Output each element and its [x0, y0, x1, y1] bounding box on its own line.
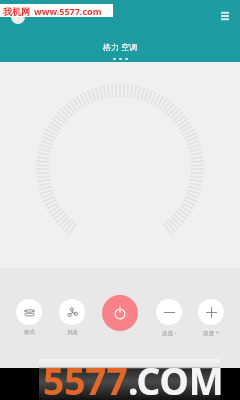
staticText: 我机网 [3, 6, 30, 17]
button[interactable]: Power [102, 295, 138, 331]
button[interactable]: 模式 [7, 299, 51, 336]
button[interactable]: Menu [212, 3, 238, 29]
button[interactable]: 温度 + [189, 299, 233, 337]
staticText: 模式 [24, 329, 35, 336]
staticText: 温度 - [162, 329, 177, 337]
staticText: www.5577.com [34, 5, 102, 17]
button[interactable]: 风速 [50, 299, 94, 336]
staticText: 5577 [43, 355, 128, 400]
staticText: 温度 + [203, 329, 219, 337]
staticText: 格力 空调 [103, 41, 138, 52]
button[interactable]: 温度 - [147, 299, 191, 337]
button[interactable]: Back [5, 3, 31, 29]
staticText: 风速 [67, 329, 78, 336]
staticText: .COM [128, 355, 224, 400]
